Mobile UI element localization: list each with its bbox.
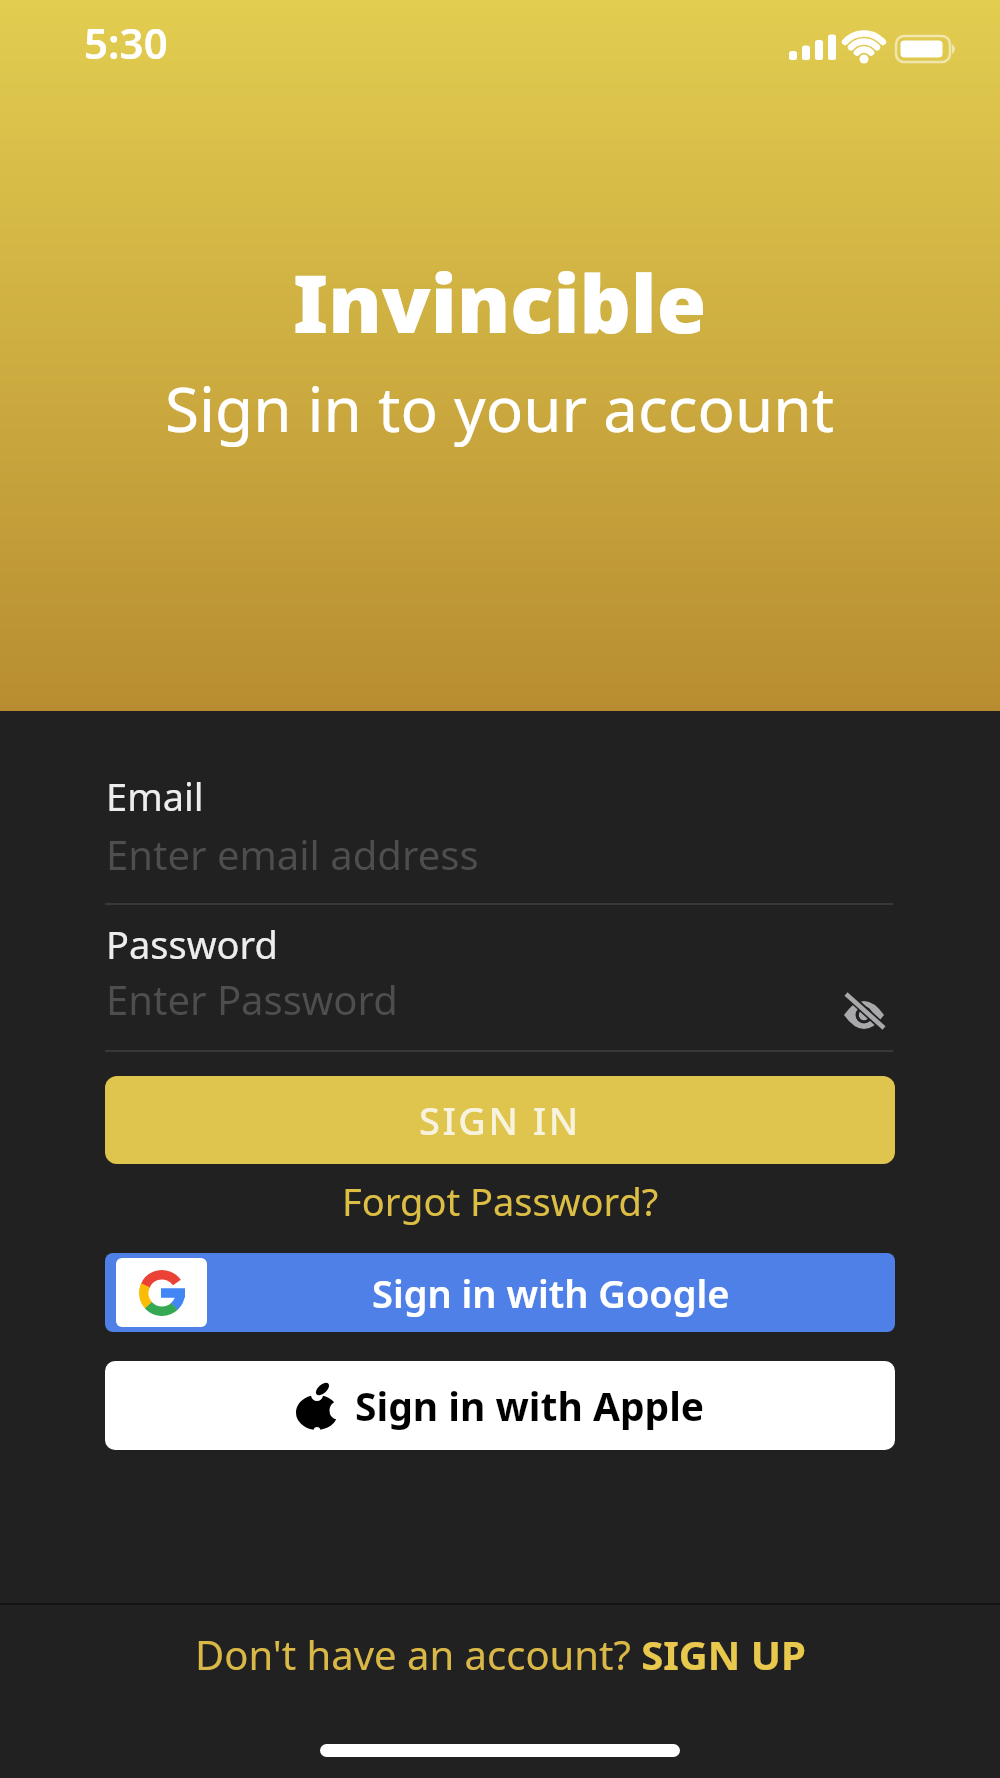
staticText: 5:30 xyxy=(84,14,168,71)
staticText: Invincible xyxy=(293,247,707,356)
button[interactable]: Don't have an account? SIGN UP xyxy=(195,1627,806,1681)
button[interactable] xyxy=(843,996,885,1032)
button[interactable]: Sign in with Apple xyxy=(105,1361,895,1450)
button[interactable]: Forgot Password? xyxy=(342,1175,659,1227)
staticText: Sign in with Apple xyxy=(355,1379,705,1432)
button[interactable]: Sign in with Google xyxy=(105,1253,895,1332)
staticText: Sign in with Google xyxy=(372,1267,730,1319)
staticText: Enter email address xyxy=(106,827,479,881)
button[interactable]: SIGN IN xyxy=(105,1076,895,1164)
staticText: Sign in to your account xyxy=(165,366,835,450)
staticText: Password xyxy=(106,918,278,970)
staticText: Email xyxy=(106,770,204,822)
staticText: SIGN IN xyxy=(419,1094,581,1146)
staticText: Enter Password xyxy=(106,972,398,1026)
